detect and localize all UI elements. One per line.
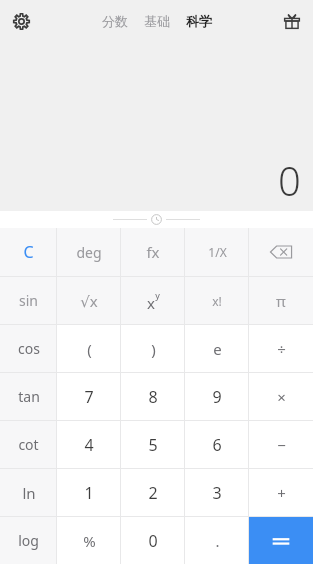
button[interactable]: x! — [185, 277, 249, 324]
staticText: deg — [76, 243, 102, 262]
button[interactable]: 9 — [185, 373, 249, 420]
staticText: C — [23, 241, 34, 263]
staticText: + — [277, 483, 286, 503]
button[interactable]: deg — [57, 228, 121, 276]
staticText: tan — [18, 387, 40, 406]
button[interactable]: 1/X — [185, 228, 249, 276]
staticText: x — [147, 293, 155, 313]
staticText: x! — [212, 293, 222, 309]
button[interactable]: Backspace — [249, 228, 313, 276]
button[interactable]: Gift — [275, 4, 309, 38]
button[interactable]: History — [113, 214, 200, 225]
button[interactable]: − — [249, 421, 313, 468]
button[interactable]: % — [57, 517, 121, 564]
button[interactable]: 8 — [121, 373, 185, 420]
staticText: × — [277, 387, 286, 407]
button[interactable]: . — [185, 517, 249, 564]
staticText: 5 — [148, 434, 158, 456]
button[interactable]: sin — [0, 277, 57, 324]
button[interactable]: 1 — [57, 469, 121, 516]
button[interactable]: × — [249, 373, 313, 420]
button[interactable]: 6 — [185, 421, 249, 468]
staticText: 0 — [278, 153, 301, 207]
button[interactable]: √x — [57, 277, 121, 324]
staticText: 0 — [148, 530, 158, 552]
button[interactable]: 科学 — [184, 9, 214, 33]
button[interactable]: 3 — [185, 469, 249, 516]
button[interactable]: 4 — [57, 421, 121, 468]
button[interactable]: 基础 — [142, 9, 172, 33]
staticText: % — [83, 531, 96, 551]
staticText: e — [213, 339, 222, 359]
button[interactable]: cot — [0, 421, 57, 468]
staticText: 1 — [84, 482, 94, 504]
button[interactable] — [249, 517, 313, 564]
staticText: √x — [80, 291, 98, 311]
button[interactable]: 7 — [57, 373, 121, 420]
staticText: fx — [146, 242, 160, 262]
staticText: cos — [18, 339, 40, 358]
button[interactable]: tan — [0, 373, 57, 420]
button[interactable]: e — [185, 325, 249, 372]
button[interactable]: ) — [121, 325, 185, 372]
button[interactable]: 分数 — [100, 9, 130, 33]
button[interactable]: fx — [121, 228, 185, 276]
staticText: ln — [22, 483, 36, 503]
staticText: − — [277, 435, 286, 455]
staticText: 分数 — [102, 13, 128, 29]
staticText: 基础 — [144, 13, 170, 29]
staticText: 4 — [84, 434, 94, 456]
button[interactable]: 0 — [121, 517, 185, 564]
staticText: 6 — [212, 434, 222, 456]
staticText: 1/X — [208, 244, 227, 260]
button[interactable]: ln — [0, 469, 57, 516]
button[interactable]: Settings — [4, 4, 38, 38]
button[interactable]: 2 — [121, 469, 185, 516]
staticText: ) — [151, 339, 156, 359]
staticText: 7 — [84, 386, 94, 408]
button[interactable]: π — [249, 277, 313, 324]
staticText: 3 — [212, 482, 222, 504]
button[interactable]: log — [0, 517, 57, 564]
staticText: 2 — [148, 482, 158, 504]
staticText: . — [215, 531, 220, 551]
staticText: log — [18, 531, 39, 550]
staticText: 8 — [148, 386, 158, 408]
staticText: 9 — [212, 386, 222, 408]
staticText: sin — [19, 291, 38, 310]
staticText: π — [276, 291, 286, 311]
button[interactable]: ÷ — [249, 325, 313, 372]
button[interactable]: + — [249, 469, 313, 516]
staticText: ( — [87, 339, 92, 359]
button[interactable]: x — [121, 277, 185, 324]
staticText: y — [155, 289, 160, 301]
button[interactable]: 5 — [121, 421, 185, 468]
button[interactable]: C — [0, 228, 57, 276]
button[interactable]: ( — [57, 325, 121, 372]
staticText: cot — [18, 435, 39, 454]
button[interactable]: cos — [0, 325, 57, 372]
staticText: 科学 — [186, 13, 212, 29]
staticText: ÷ — [277, 339, 286, 359]
